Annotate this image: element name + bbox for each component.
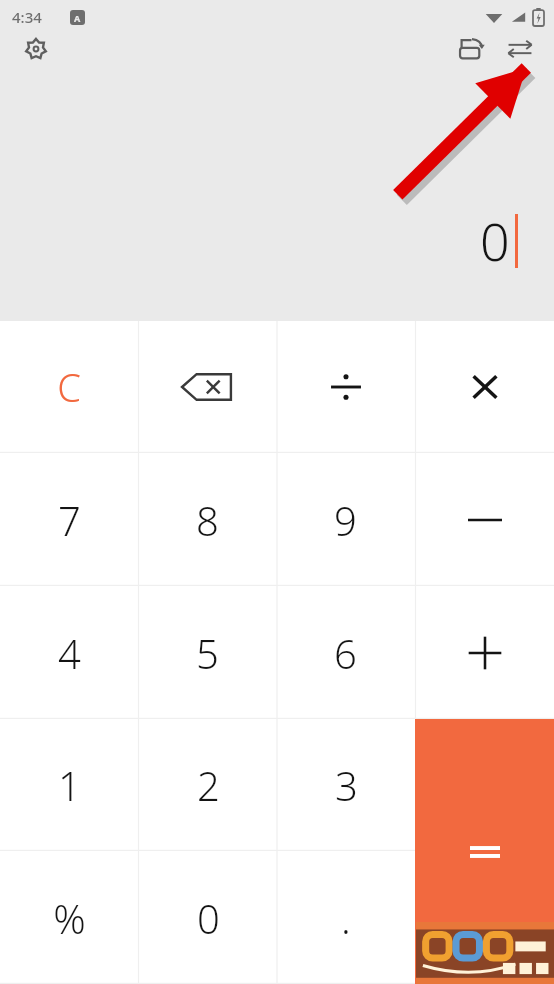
button[interactable]: Backspace <box>138 321 276 453</box>
button[interactable] <box>415 321 554 453</box>
staticText: 6 <box>334 626 357 680</box>
staticText: C <box>57 361 81 413</box>
staticText: 2 <box>197 758 220 812</box>
button[interactable]: % <box>0 851 139 984</box>
staticText: 5 <box>196 626 219 680</box>
button[interactable]: 8 <box>138 453 276 586</box>
button[interactable]: 3 <box>277 719 415 851</box>
button[interactable] <box>415 586 554 719</box>
button[interactable]: 6 <box>276 586 415 719</box>
staticText: 9 <box>334 493 357 547</box>
button[interactable] <box>415 453 554 586</box>
button[interactable]: 7 <box>0 453 138 586</box>
staticText: 4 <box>58 626 81 680</box>
button[interactable]: Settings <box>12 25 60 73</box>
button[interactable]: 0 <box>139 851 277 984</box>
staticText: 8 <box>196 493 219 547</box>
staticText: 1 <box>58 758 81 812</box>
button[interactable]: 2 <box>139 719 277 851</box>
staticText: 0 <box>480 205 510 276</box>
staticText: 4:34 <box>12 7 42 27</box>
button[interactable]: Unit converter <box>496 25 544 73</box>
button[interactable]: 5 <box>138 586 276 719</box>
button[interactable]: Rotate screen <box>448 25 496 73</box>
button[interactable] <box>276 321 415 453</box>
button[interactable]: C <box>0 321 138 453</box>
staticText: A <box>74 12 81 24</box>
button[interactable]: 1 <box>0 719 139 851</box>
staticText: 3 <box>335 758 358 812</box>
button[interactable]: 4 <box>0 586 138 719</box>
staticText: . <box>341 891 351 945</box>
button[interactable]: 9 <box>276 453 415 586</box>
button[interactable] <box>415 719 554 984</box>
staticText: 0 <box>197 891 220 945</box>
staticText: % <box>53 891 86 945</box>
staticText: 7 <box>58 493 81 547</box>
button[interactable]: . <box>277 851 415 984</box>
